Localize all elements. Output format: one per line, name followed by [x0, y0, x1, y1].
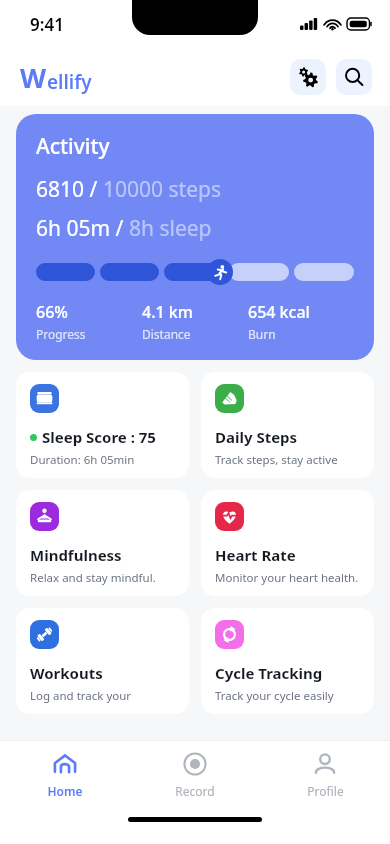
staticText: 8h sleep — [129, 214, 212, 243]
staticText: 10000 steps — [103, 175, 221, 204]
staticText: 9:41 — [30, 13, 64, 36]
button[interactable]: Search — [336, 59, 372, 95]
staticText: Monitor your heart health. — [215, 570, 359, 586]
staticText: 4.1 km — [142, 301, 193, 323]
staticText: Duration: 6h 05min — [30, 452, 135, 468]
staticText: 654 kcal — [248, 301, 310, 323]
staticText: Daily Steps — [215, 427, 298, 447]
button[interactable]: Profile — [260, 741, 390, 809]
button[interactable]: Cycle Tracking — [201, 608, 374, 714]
staticText: Workouts — [30, 663, 103, 683]
staticText: ellify — [47, 69, 92, 95]
button[interactable]: Settings — [290, 59, 326, 95]
staticText: Track your cycle easily — [215, 688, 334, 704]
button[interactable]: Activity — [16, 114, 374, 360]
button[interactable]: Home — [0, 741, 130, 809]
staticText: Home — [47, 783, 83, 799]
staticText: W — [20, 59, 47, 96]
staticText: Profile — [307, 783, 344, 799]
staticText: 66% — [36, 301, 68, 323]
button[interactable]: Sleep Score : 75 — [16, 372, 189, 478]
staticText: Activity — [36, 132, 110, 161]
staticText: 6h 05m / — [36, 214, 129, 243]
staticText: Distance — [142, 326, 191, 342]
button[interactable]: Mindfulness — [16, 490, 189, 596]
staticText: Track steps, stay active — [215, 452, 338, 468]
staticText: Progress — [36, 326, 86, 342]
staticText: Record — [175, 783, 215, 799]
button[interactable]: Workouts — [16, 608, 189, 714]
button[interactable]: Heart Rate — [201, 490, 374, 596]
staticText: Log and track your workouts. — [30, 688, 179, 704]
staticText: Sleep Score : 75 — [42, 427, 156, 447]
staticText: Mindfulness — [30, 545, 122, 565]
staticText: Heart Rate — [215, 545, 296, 565]
button[interactable]: Daily Steps — [201, 372, 374, 478]
staticText: Burn — [248, 326, 276, 342]
staticText: Relax and stay mindful. — [30, 570, 156, 586]
staticText: 6810 / — [36, 175, 103, 204]
button[interactable]: Record — [130, 741, 260, 809]
staticText: Cycle Tracking — [215, 663, 323, 683]
